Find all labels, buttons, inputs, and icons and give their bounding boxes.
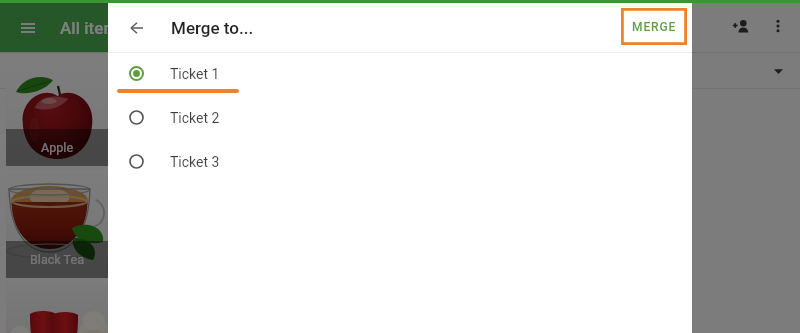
staticText: Black Tea — [30, 252, 85, 267]
button[interactable]: More options — [758, 6, 798, 46]
button[interactable]: Strawberry — [6, 282, 108, 333]
button[interactable]: Add person — [721, 6, 761, 46]
button[interactable]: Apple — [6, 57, 108, 166]
staticText: Merge to... — [171, 18, 254, 38]
staticText: Apple — [41, 140, 74, 155]
button[interactable]: Black Tea — [6, 170, 108, 278]
button[interactable]: MERGE — [621, 8, 687, 45]
button[interactable]: Open navigation drawer — [4, 4, 52, 52]
staticText: MERGE — [632, 20, 677, 34]
button[interactable]: Ticket 3 — [108, 139, 692, 183]
staticText: Ticket 2 — [170, 110, 220, 126]
button[interactable]: Sort options — [762, 55, 794, 87]
staticText: Ticket 1 — [170, 66, 220, 82]
staticText: All items — [60, 18, 127, 38]
button[interactable]: Ticket 2 — [108, 95, 692, 139]
staticText: Ticket 3 — [170, 154, 220, 170]
button[interactable]: Ticket 1 — [108, 51, 692, 95]
button[interactable]: Back — [113, 4, 161, 52]
